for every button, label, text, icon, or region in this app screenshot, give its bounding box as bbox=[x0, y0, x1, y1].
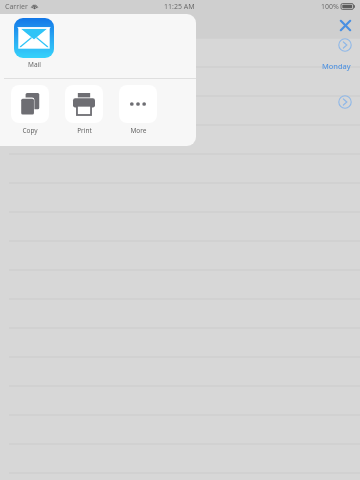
staticText: 11:25 AM bbox=[164, 2, 195, 12]
button[interactable]: Close bbox=[333, 13, 357, 37]
staticText: Dashboard bbox=[16, 20, 68, 34]
button[interactable]: Copy bbox=[8, 85, 52, 135]
staticText: Mail bbox=[28, 60, 41, 69]
button[interactable]: Open detail bbox=[338, 38, 352, 52]
button[interactable]: More bbox=[116, 85, 160, 135]
button[interactable]: Mail bbox=[12, 18, 56, 69]
staticText: More bbox=[130, 126, 147, 135]
staticText: Print bbox=[77, 126, 92, 135]
button[interactable]: Open detail bbox=[338, 95, 352, 109]
staticText: 100% bbox=[321, 2, 339, 12]
staticText: Carrier bbox=[5, 2, 28, 12]
button[interactable]: Print bbox=[62, 85, 106, 135]
staticText: Copy bbox=[22, 126, 38, 135]
staticText: Monday bbox=[322, 61, 351, 71]
